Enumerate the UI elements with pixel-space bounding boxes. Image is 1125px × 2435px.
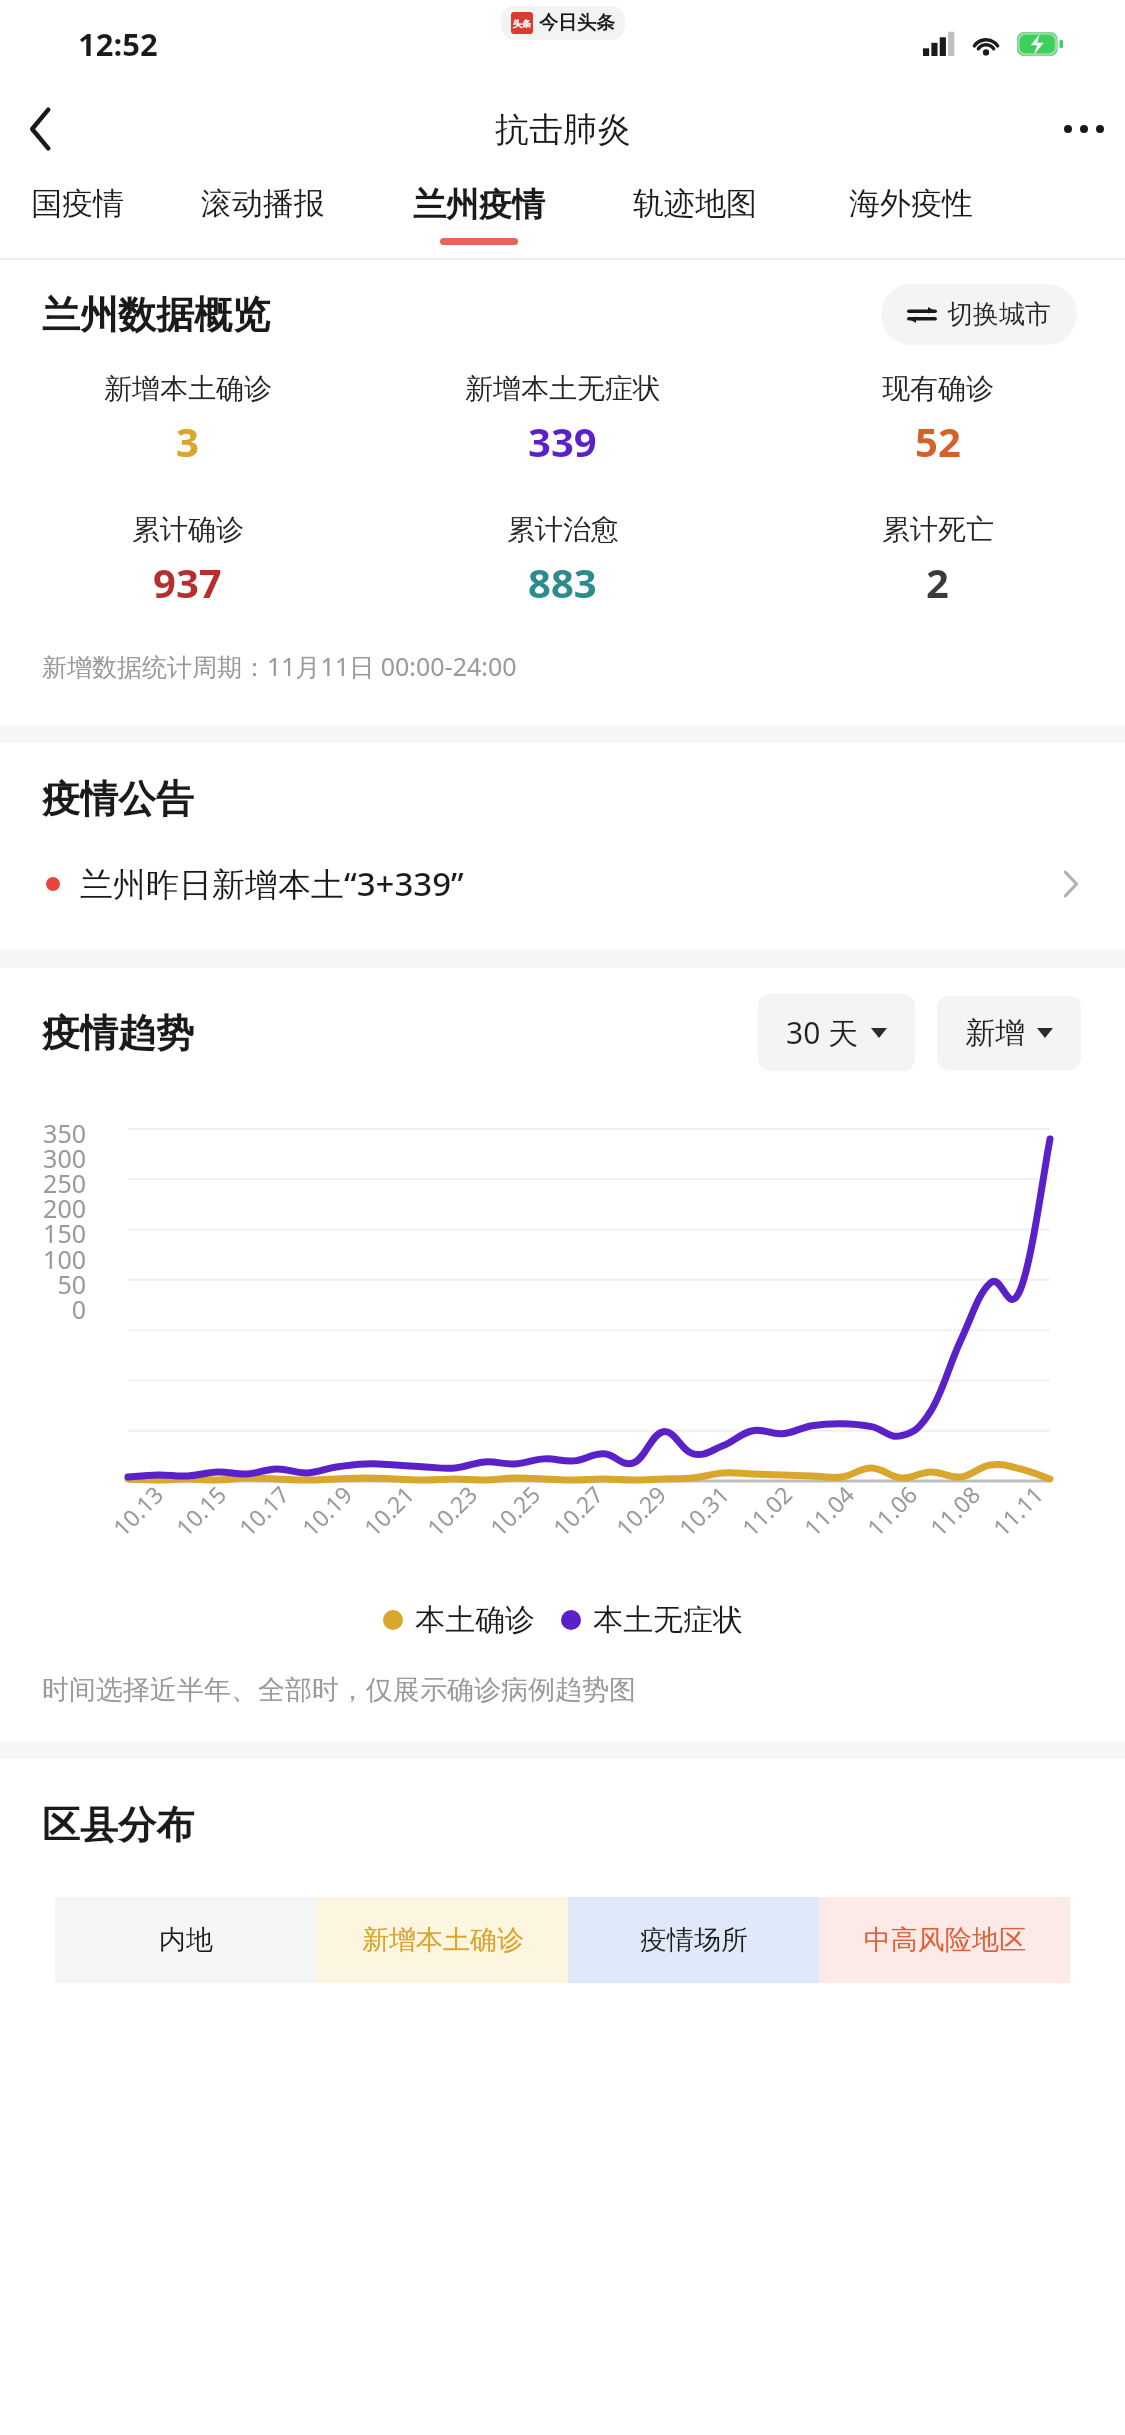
staticText: 海外疫性 (849, 184, 973, 223)
staticText: 0 (0, 1292, 86, 1326)
button[interactable]: 中高风险地区 (819, 1897, 1070, 1983)
button[interactable]: More options (1043, 88, 1125, 170)
button[interactable]: 内地 (55, 1897, 317, 1983)
staticText: 头条 (513, 18, 531, 29)
staticText: 10.13 (106, 1479, 169, 1542)
button[interactable]: 新增本土无症状 (375, 371, 750, 468)
staticText: 2 (926, 555, 949, 609)
button[interactable]: 疫情场所 (568, 1897, 819, 1983)
button[interactable]: 滚动播报 (155, 170, 371, 258)
staticText: 滚动播报 (201, 184, 325, 223)
staticText: 新增本土无症状 (465, 371, 661, 406)
staticText: 10.21 (357, 1479, 420, 1542)
staticText: 11.04 (797, 1479, 860, 1542)
button[interactable]: 累计治愈 (375, 512, 750, 609)
button[interactable]: 兰州昨日新增本土“3+339” (0, 855, 1125, 912)
button[interactable]: 海外疫性 (803, 170, 1019, 258)
button[interactable]: 轨迹地图 (587, 170, 803, 258)
button[interactable]: 累计死亡 (750, 512, 1125, 609)
staticText: 50 (0, 1267, 86, 1301)
staticText: 累计死亡 (882, 512, 994, 547)
button[interactable]: 切换城市 (881, 284, 1077, 345)
staticText: 新增本土确诊 (104, 371, 272, 406)
staticText: 累计确诊 (132, 512, 244, 547)
staticText: 339 (528, 414, 597, 468)
staticText: 本土无症状 (593, 1601, 743, 1639)
button[interactable]: 国疫情 (0, 170, 155, 258)
staticText: 30 天 (786, 1012, 859, 1053)
staticText: 11.06 (860, 1479, 923, 1542)
staticText: 轨迹地图 (633, 184, 757, 223)
staticText: 新增 (965, 1014, 1025, 1052)
button[interactable]: 新增本土确诊 (317, 1897, 568, 1983)
staticText: 10.19 (295, 1479, 358, 1542)
staticText: 350 (0, 1116, 86, 1150)
staticText: 国疫情 (31, 184, 124, 223)
staticText: 10.31 (672, 1479, 735, 1542)
staticText: 今日头条 (539, 11, 615, 35)
button[interactable]: 30 天 (758, 994, 915, 1071)
button[interactable]: 新增本土确诊 (0, 371, 375, 468)
staticText: 兰州数据概览 (42, 291, 270, 339)
staticText: 兰州昨日新增本土“3+339” (80, 861, 464, 906)
staticText: 新增数据统计周期：11月11日 00:00-24:00 (42, 649, 517, 683)
staticText: 10.27 (546, 1479, 609, 1542)
staticText: 10.29 (609, 1479, 672, 1542)
staticText: 本土确诊 (415, 1601, 535, 1639)
staticText: 52 (915, 414, 961, 468)
staticText: 现有确诊 (882, 371, 994, 406)
staticText: 883 (528, 555, 597, 609)
staticText: 10.25 (483, 1479, 546, 1542)
staticText: 10.15 (169, 1479, 232, 1542)
staticText: 中高风险地区 (864, 1923, 1026, 1957)
staticText: 250 (0, 1166, 86, 1200)
staticText: 时间选择近半年、全部时，仅展示确诊病例趋势图 (42, 1673, 636, 1707)
staticText: 疫情公告 (42, 775, 194, 823)
staticText: 内地 (159, 1923, 213, 1957)
staticText: 300 (0, 1141, 86, 1175)
staticText: 200 (0, 1191, 86, 1225)
staticText: 10.17 (232, 1479, 295, 1542)
staticText: 11.08 (923, 1479, 986, 1542)
staticText: 11.11 (986, 1479, 1049, 1542)
staticText: 累计治愈 (507, 512, 619, 547)
staticText: 12:52 (78, 23, 158, 65)
staticText: 150 (0, 1216, 86, 1250)
staticText: 抗击肺炎 (495, 108, 631, 151)
staticText: 兰州疫情 (413, 184, 545, 226)
staticText: 11.02 (735, 1479, 798, 1542)
button[interactable]: 累计确诊 (0, 512, 375, 609)
staticText: 3 (176, 414, 199, 468)
staticText: 疫情场所 (640, 1923, 748, 1957)
staticText: 区县分布 (42, 1801, 194, 1849)
staticText: 10.23 (420, 1479, 483, 1542)
button[interactable]: Back (0, 88, 82, 170)
staticText: 疫情趋势 (42, 1009, 194, 1057)
button[interactable]: 兰州疫情 (371, 170, 587, 258)
staticText: 100 (0, 1242, 86, 1276)
staticText: 新增本土确诊 (362, 1923, 524, 1957)
staticText: 937 (153, 555, 222, 609)
button[interactable]: 现有确诊 (750, 371, 1125, 468)
button[interactable]: 新增 (937, 996, 1081, 1070)
staticText: 切换城市 (947, 298, 1051, 331)
